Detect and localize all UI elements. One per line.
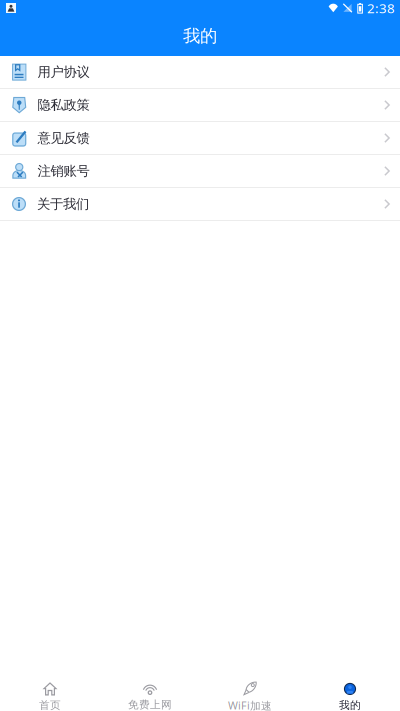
- button[interactable]: 首页: [0, 660, 100, 711]
- button[interactable]: WiFi加速: [200, 660, 300, 711]
- staticText: 首页: [39, 699, 61, 711]
- button[interactable]: 我的: [300, 660, 400, 711]
- staticText: WiFi加速: [228, 698, 272, 711]
- button[interactable]: 隐私政策: [0, 89, 400, 122]
- staticText: 我的: [339, 698, 361, 711]
- staticText: 2:38: [367, 0, 395, 17]
- staticText: 注销账号: [37, 163, 89, 179]
- staticText: 免费上网: [128, 698, 172, 711]
- staticText: 我的: [183, 25, 217, 47]
- staticText: 用户协议: [37, 64, 89, 80]
- staticText: 关于我们: [37, 196, 89, 212]
- button[interactable]: 意见反馈: [0, 122, 400, 155]
- button[interactable]: 注销账号: [0, 155, 400, 188]
- button[interactable]: 关于我们: [0, 188, 400, 221]
- button[interactable]: 用户协议: [0, 56, 400, 89]
- staticText: 隐私政策: [37, 97, 89, 113]
- staticText: 意见反馈: [37, 130, 89, 146]
- button[interactable]: 免费上网: [100, 660, 200, 711]
